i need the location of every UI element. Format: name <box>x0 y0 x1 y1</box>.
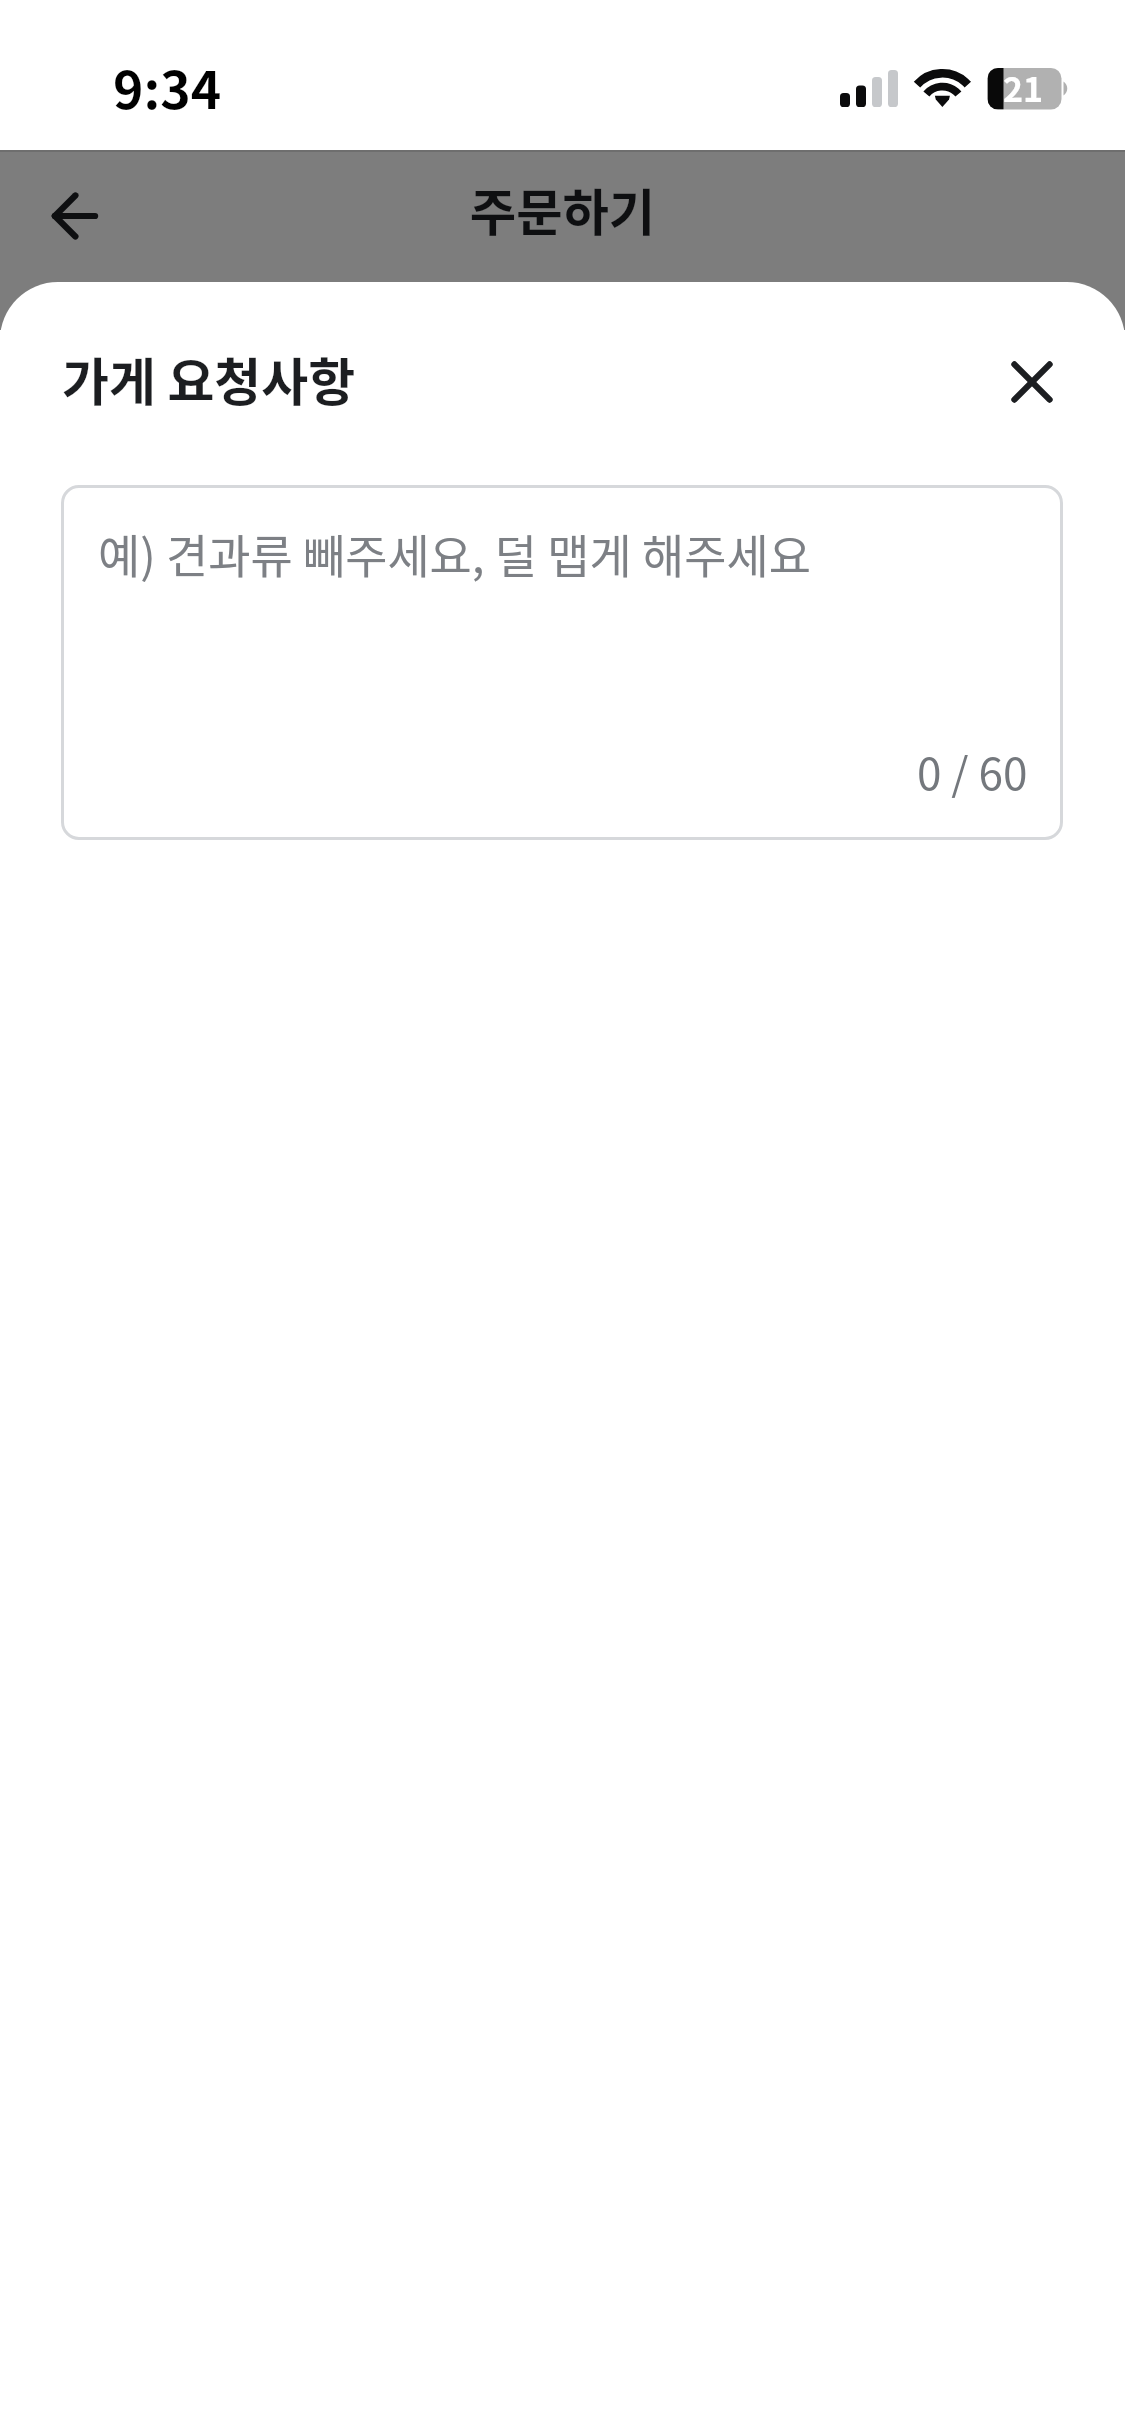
button[interactable]: 예) 견과류 빼주세요, 덜 맵게 해주세요 <box>61 485 1063 840</box>
staticText: 0 / 60 <box>917 739 1028 803</box>
staticText: 가게 요청사항 <box>62 342 356 416</box>
button[interactable]: Back <box>3 144 147 288</box>
staticText: 9:34 <box>113 49 222 124</box>
staticText: 예) 견과류 빼주세요, 덜 맵게 해주세요 <box>98 520 811 586</box>
staticText: 주문하기 <box>0 173 1125 246</box>
button[interactable]: Close <box>966 316 1098 448</box>
staticText: 21 <box>1003 63 1044 112</box>
